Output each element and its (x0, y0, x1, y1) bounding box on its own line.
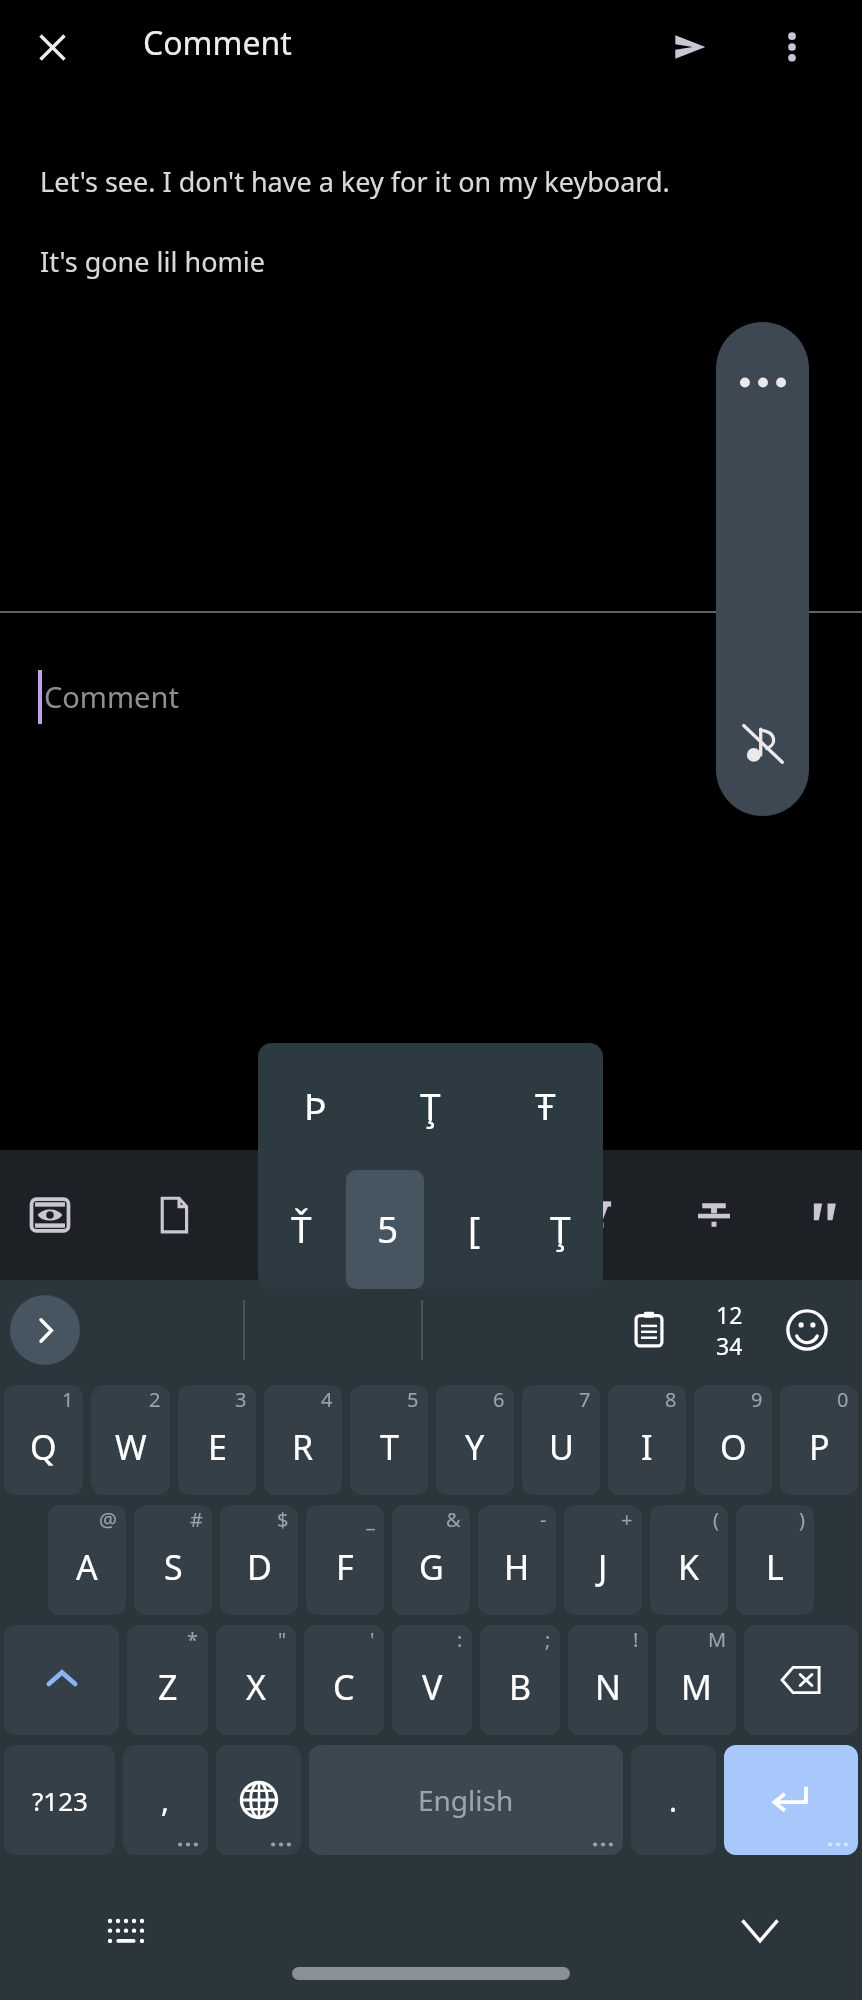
button[interactable]: Send (660, 17, 720, 77)
button[interactable]: English (309, 1745, 623, 1855)
button[interactable]: @ (48, 1505, 126, 1615)
staticText: Ţ (420, 1080, 441, 1130)
button[interactable]: Language (216, 1745, 301, 1855)
staticText: K (678, 1544, 700, 1590)
staticText: English (418, 1781, 514, 1819)
button[interactable]: Numbers (696, 1297, 762, 1363)
staticText: Comment (143, 21, 292, 65)
button[interactable]: ) (736, 1505, 814, 1615)
button[interactable]: Ţ (517, 1166, 603, 1289)
button[interactable]: Expand toolbar (10, 1295, 80, 1365)
button[interactable]: 5 (345, 1166, 431, 1289)
button[interactable]: + (564, 1505, 642, 1615)
button[interactable]: 5 (350, 1385, 428, 1495)
staticText: " (278, 1626, 287, 1653)
button[interactable]: Mute music (716, 686, 809, 816)
staticText: 34 (716, 1330, 743, 1361)
staticText: 12 (716, 1299, 743, 1330)
staticText: Let's see. I don't have a key for it on … (40, 163, 670, 200)
button[interactable]: 3 (178, 1385, 256, 1495)
button[interactable]: , (123, 1745, 208, 1855)
button[interactable]: 4 (264, 1385, 342, 1495)
staticText: Y (465, 1424, 485, 1470)
button[interactable]: Italic (566, 1179, 638, 1251)
staticText: It's gone lil homie (40, 243, 265, 280)
button[interactable]: * (127, 1625, 208, 1735)
staticText: * (187, 1626, 199, 1653)
staticText: U (549, 1424, 574, 1470)
button[interactable]: . (631, 1745, 716, 1855)
staticText: ; (545, 1626, 551, 1653)
staticText: 1 (62, 1386, 74, 1413)
button[interactable]: $ (220, 1505, 298, 1615)
button[interactable]: : (392, 1625, 472, 1735)
button[interactable]: Preview (14, 1179, 86, 1251)
button[interactable]: ?123 (4, 1745, 115, 1855)
button[interactable]: Shift (4, 1625, 119, 1735)
button[interactable]: 8 (608, 1385, 686, 1495)
button[interactable]: Quote (790, 1179, 862, 1251)
button[interactable]: Clipboard (616, 1297, 682, 1363)
button[interactable]: _ (306, 1505, 384, 1615)
staticText: F (336, 1544, 354, 1590)
button[interactable]: - (478, 1505, 556, 1615)
staticText: ( (713, 1506, 719, 1533)
staticText: # (190, 1506, 203, 1533)
button[interactable]: # (134, 1505, 212, 1615)
button[interactable]: Drag handle (716, 322, 809, 442)
staticText: - (540, 1506, 547, 1533)
button[interactable]: ( (650, 1505, 728, 1615)
staticText: ?123 (32, 1783, 88, 1818)
button[interactable]: 0 (780, 1385, 858, 1495)
staticText: G (419, 1544, 444, 1590)
button[interactable]: Close (23, 18, 81, 76)
staticText: @ (99, 1506, 117, 1533)
staticText: M (708, 1626, 727, 1653)
staticText: . (669, 1780, 678, 1821)
staticText: , (161, 1780, 170, 1821)
button[interactable]: Ť (258, 1166, 345, 1289)
button[interactable]: 2 (91, 1385, 170, 1495)
staticText: Þ (304, 1080, 327, 1130)
button[interactable]: Comment (0, 613, 862, 803)
button[interactable]: & (392, 1505, 470, 1615)
staticText: 7 (579, 1386, 591, 1413)
staticText: B (509, 1664, 532, 1710)
staticText: 6 (493, 1386, 505, 1413)
staticText: A (76, 1544, 98, 1590)
button[interactable]: Keyboard settings (92, 1896, 160, 1964)
button[interactable]: [ (431, 1166, 517, 1289)
button[interactable]: 6 (436, 1385, 514, 1495)
staticText: 0 (837, 1386, 849, 1413)
button[interactable]: Backspace (744, 1625, 858, 1735)
button[interactable]: Emoji (774, 1297, 840, 1363)
staticText: T (380, 1424, 399, 1470)
button[interactable]: Ŧ (488, 1043, 603, 1166)
button[interactable]: 1 (4, 1385, 83, 1495)
button[interactable]: M (656, 1625, 736, 1735)
button[interactable]: More options (762, 17, 822, 77)
button[interactable]: ' (304, 1625, 384, 1735)
button[interactable]: Þ (258, 1043, 373, 1166)
button[interactable]: Enter (724, 1745, 858, 1855)
staticText: $ (277, 1506, 289, 1533)
staticText: + (621, 1506, 633, 1533)
button[interactable]: " (216, 1625, 296, 1735)
button[interactable]: Strikethrough (678, 1179, 750, 1251)
staticText: Ť (291, 1203, 312, 1253)
button[interactable]: 9 (694, 1385, 772, 1495)
staticText: & (446, 1506, 461, 1533)
staticText: V (422, 1664, 443, 1710)
staticText: 8 (665, 1386, 677, 1413)
button[interactable]: Attach document (138, 1179, 210, 1251)
button[interactable]: Hide keyboard (724, 1894, 796, 1966)
button[interactable]: Ţ (373, 1043, 488, 1166)
button[interactable]: ; (480, 1625, 560, 1735)
staticText: Comment (44, 677, 179, 716)
staticText: Z (158, 1664, 178, 1710)
button[interactable]: ! (568, 1625, 648, 1735)
staticText: 4 (321, 1386, 333, 1413)
staticText: X (246, 1664, 266, 1710)
button[interactable]: 7 (522, 1385, 600, 1495)
staticText: : (457, 1626, 463, 1653)
